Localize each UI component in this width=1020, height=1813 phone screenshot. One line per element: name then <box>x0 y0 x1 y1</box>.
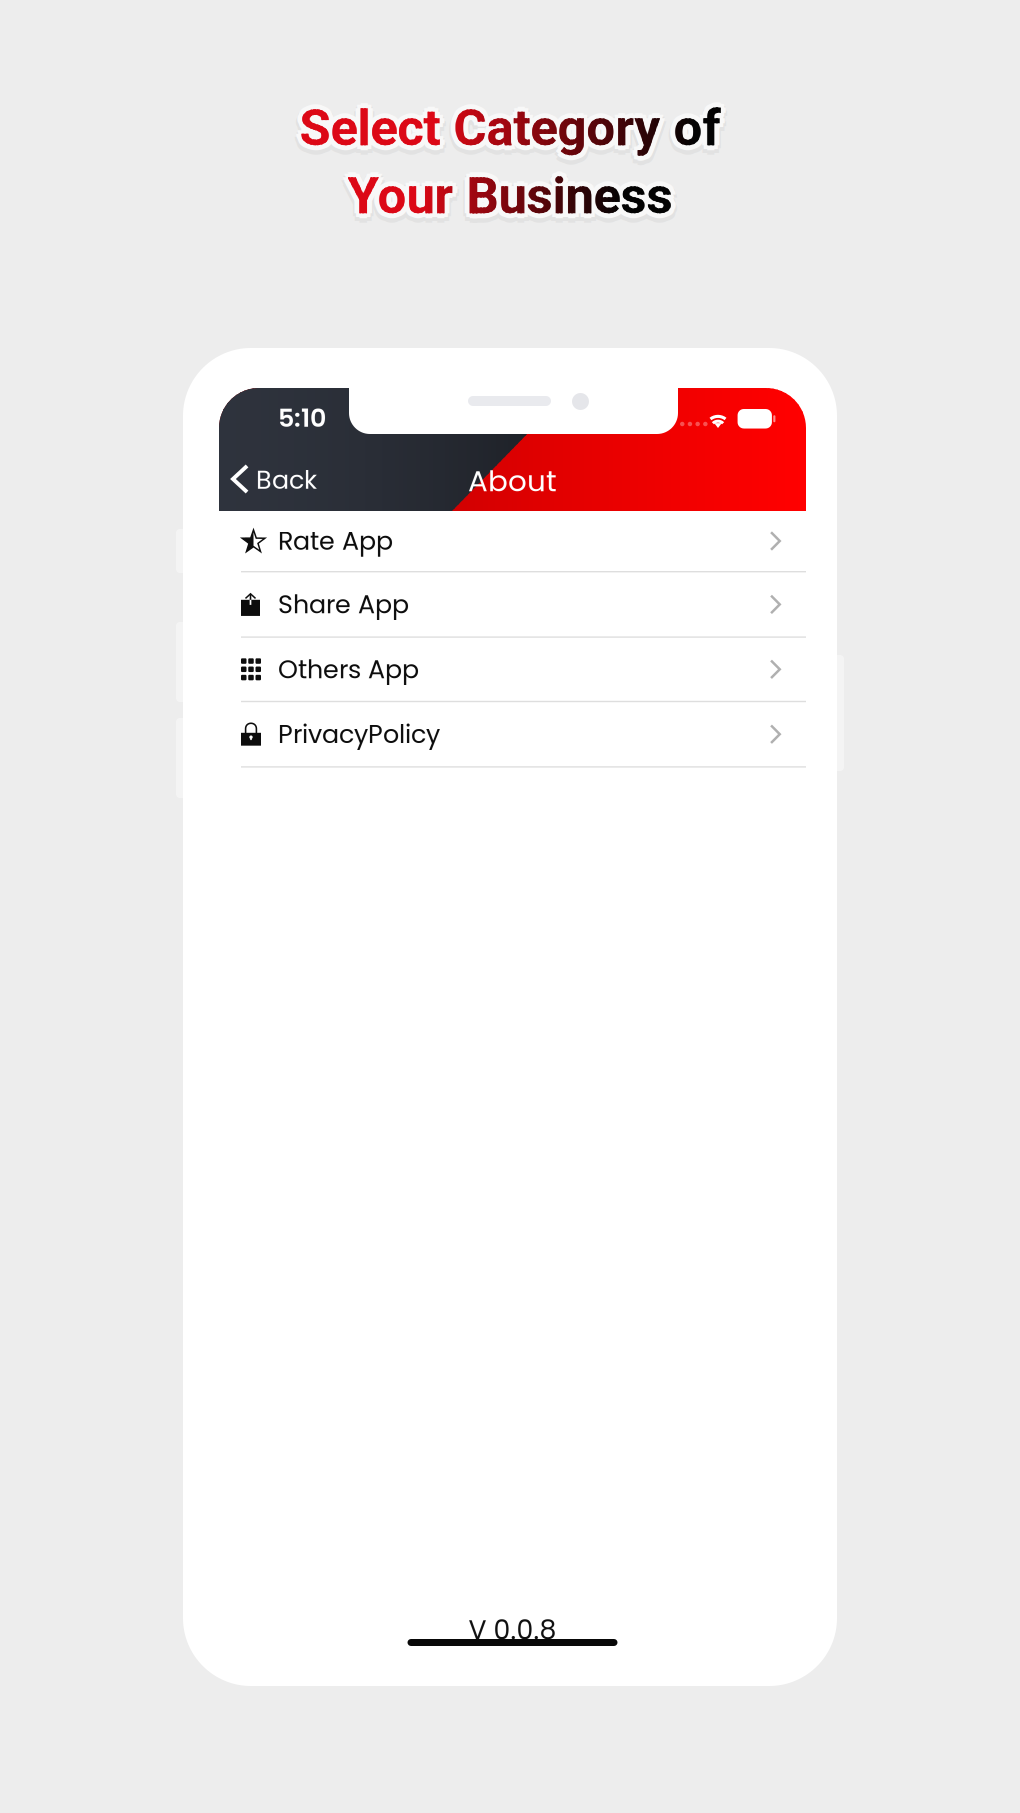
staticText: Your Business <box>347 171 672 231</box>
staticText: Your Business <box>347 166 672 226</box>
staticText: Your Business <box>347 166 672 226</box>
staticText: Your Business <box>347 161 672 221</box>
button[interactable]: Back <box>219 434 329 511</box>
staticText: Select Category of <box>299 98 720 158</box>
staticText: Your Business <box>347 166 672 226</box>
staticText: Select Category of <box>299 98 720 158</box>
staticText: Your Business <box>347 166 672 226</box>
staticText: Your Business <box>347 166 672 226</box>
staticText: Select Category of <box>299 98 720 158</box>
staticText: Your Business <box>347 166 672 226</box>
staticText: Select Category of <box>299 98 720 158</box>
staticText: Select Category of <box>299 98 720 158</box>
staticText: Your Business <box>347 166 672 226</box>
staticText: Select Category of <box>299 98 720 158</box>
staticText: Your Business <box>347 166 672 226</box>
staticText: Select Category of <box>299 98 720 158</box>
staticText: Select Category of <box>299 98 720 158</box>
staticText: Select Category of <box>299 98 720 158</box>
button[interactable]: PrivacyPolicy <box>219 702 806 768</box>
staticText: Select Category of <box>299 98 720 158</box>
staticText: Your Business <box>347 166 672 226</box>
staticText: Your Business <box>347 166 672 226</box>
staticText: Your Business <box>347 166 672 226</box>
staticText: Select Category of <box>299 98 720 158</box>
staticText: Select Category of <box>299 98 720 158</box>
button[interactable]: Others App <box>219 638 806 702</box>
staticText: Select Category of <box>299 98 720 158</box>
staticText: Your Business <box>347 166 672 226</box>
staticText: Your Business <box>347 166 672 226</box>
staticText: Select Category of <box>299 98 720 158</box>
staticText: Your Business <box>347 166 672 226</box>
staticText: Select Category of <box>295 97 716 156</box>
staticText: Your Business <box>347 166 672 226</box>
staticText: Your Business <box>347 166 672 226</box>
staticText: Select Category of <box>299 98 720 158</box>
staticText: Select Category of <box>299 98 720 158</box>
staticText: Your Business <box>347 166 672 226</box>
staticText: Your Business <box>347 166 672 226</box>
staticText: Your Business <box>347 166 672 226</box>
staticText: Your Business <box>347 166 672 226</box>
staticText: Back <box>256 462 317 498</box>
staticText: Select Category of <box>299 108 720 167</box>
staticText: Your Business <box>347 166 672 226</box>
staticText: Select Category of <box>299 98 720 158</box>
staticText: Select Category of <box>299 98 720 158</box>
staticText: Select Category of <box>299 98 720 158</box>
staticText: Select Category of <box>299 98 720 158</box>
staticText: Your Business <box>347 166 672 226</box>
staticText: Select Category of <box>299 98 720 158</box>
staticText: Select Category of <box>299 98 720 158</box>
staticText: 5:10 <box>278 400 326 436</box>
staticText: Select Category of <box>299 98 720 158</box>
staticText: Select Category of <box>306 101 727 161</box>
staticText: Select Category of <box>299 98 720 158</box>
staticText: Your Business <box>347 166 672 226</box>
staticText: Your Business <box>347 166 672 226</box>
staticText: Your Business <box>347 166 672 226</box>
staticText: Your Business <box>347 166 672 226</box>
staticText: Select Category of <box>299 98 720 158</box>
staticText: Select Category of <box>299 95 720 154</box>
staticText: Your Business <box>347 166 672 226</box>
staticText: Your Business <box>347 166 672 226</box>
staticText: Select Category of <box>304 98 725 158</box>
staticText: Select Category of <box>299 98 720 158</box>
staticText: Select Category of <box>296 95 717 154</box>
staticText: Select Category of <box>299 98 720 158</box>
staticText: Select Category of <box>299 98 720 158</box>
staticText: Your Business <box>347 166 672 226</box>
staticText: Your Business <box>347 166 672 226</box>
staticText: Select Category of <box>294 98 715 158</box>
staticText: Select Category of <box>299 98 720 158</box>
staticText: Your Business <box>347 166 672 226</box>
staticText: Your Business <box>347 166 672 226</box>
staticText: Your Business <box>342 166 667 226</box>
staticText: Select Category of <box>304 106 725 165</box>
staticText: Your Business <box>347 166 672 226</box>
staticText: Select Category of <box>299 98 720 158</box>
button[interactable]: Share App <box>219 572 806 638</box>
staticText: Your Business <box>347 166 672 226</box>
staticText: Your Business <box>347 166 672 226</box>
staticText: Your Business <box>344 163 669 222</box>
staticText: Select Category of <box>299 98 720 158</box>
staticText: Select Category of <box>299 98 720 158</box>
button[interactable]: Rate App <box>219 511 806 572</box>
staticText: Select Category of <box>299 98 720 158</box>
staticText: Select Category of <box>296 102 717 161</box>
staticText: Your Business <box>347 166 672 226</box>
staticText: Select Category of <box>299 98 720 158</box>
staticText: Select Category of <box>299 98 720 158</box>
staticText: Your Business <box>344 170 669 229</box>
staticText: Select Category of <box>299 98 720 158</box>
staticText: Select Category of <box>299 98 720 158</box>
staticText: Your Business <box>347 166 672 226</box>
staticText: Your Business <box>347 166 672 226</box>
staticText: Select Category of <box>299 98 720 158</box>
staticText: Select Category of <box>299 98 720 158</box>
staticText: Select Category of <box>299 98 720 158</box>
staticText: Select Category of <box>299 98 720 158</box>
